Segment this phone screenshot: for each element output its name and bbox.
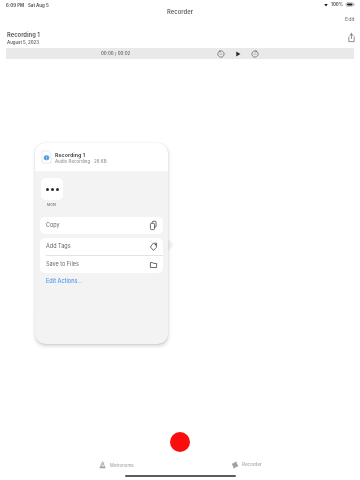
staticText: 00:00 / 00:02 bbox=[101, 51, 131, 56]
staticText: Recorder bbox=[242, 462, 262, 468]
staticText: More bbox=[47, 202, 57, 207]
staticText: Recorder bbox=[167, 8, 193, 15]
staticText: Edit bbox=[345, 16, 355, 23]
staticText: Recording 1 bbox=[7, 31, 40, 38]
staticText: Sat Aug 5 bbox=[28, 3, 49, 8]
staticText: 100% bbox=[331, 2, 344, 7]
button[interactable]: Metronome bbox=[99, 461, 134, 469]
button[interactable]: Edit Actions… bbox=[46, 278, 83, 285]
staticText: Audio Recording · 28 KB bbox=[55, 159, 107, 164]
staticText: Metronome bbox=[110, 463, 134, 468]
button[interactable]: Rewind 15 seconds bbox=[217, 50, 225, 58]
staticText: Recording 1 bbox=[55, 152, 85, 158]
staticText: Copy bbox=[46, 222, 60, 229]
button[interactable]: Copy bbox=[40, 217, 163, 234]
staticText: Edit Actions… bbox=[46, 278, 83, 285]
button[interactable]: Play bbox=[234, 50, 242, 58]
staticText: August 5, 2023 bbox=[7, 40, 39, 45]
button[interactable]: More bbox=[41, 178, 63, 200]
button[interactable]: Save to Files bbox=[40, 256, 163, 273]
staticText: Save to Files bbox=[46, 261, 79, 268]
button[interactable]: Share bbox=[348, 33, 355, 42]
button[interactable]: Recorder bbox=[231, 461, 262, 469]
button[interactable]: Record bbox=[170, 432, 190, 452]
staticText: Add Tags bbox=[46, 243, 71, 250]
button[interactable]: Forward 15 seconds bbox=[251, 50, 259, 58]
staticText: 6:09 PM bbox=[6, 3, 25, 8]
button[interactable]: Edit bbox=[345, 16, 355, 23]
button[interactable]: Add Tags bbox=[40, 238, 163, 255]
